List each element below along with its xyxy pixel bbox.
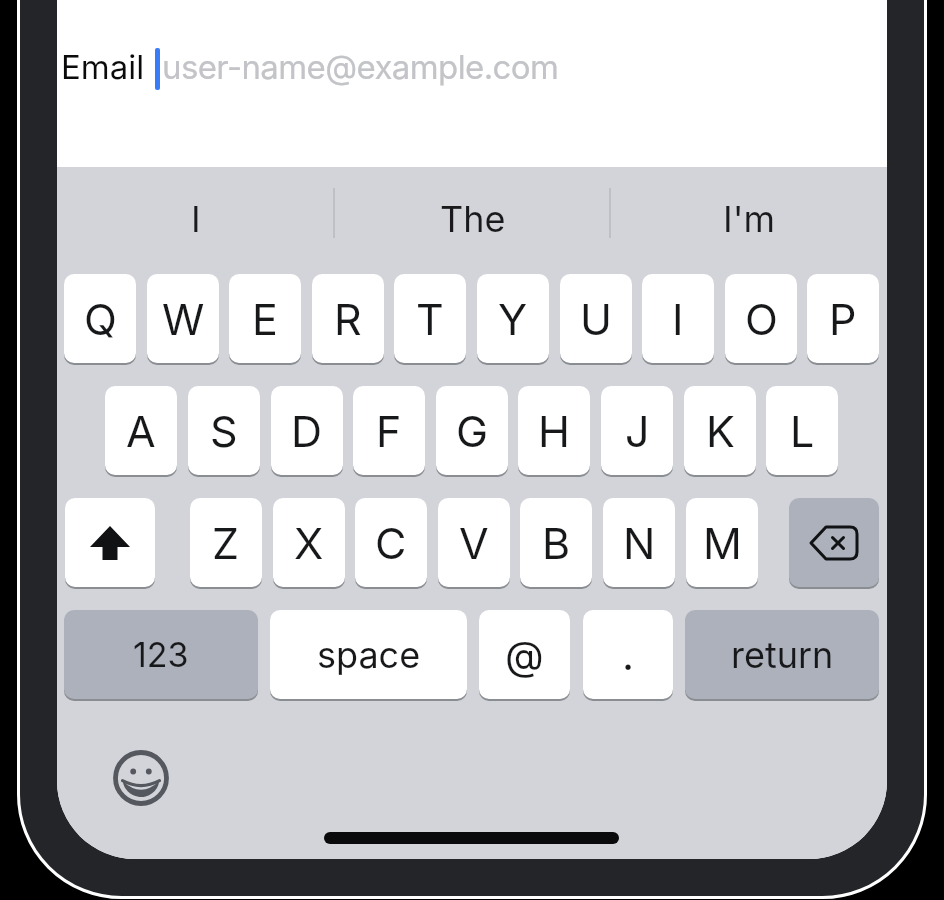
staticText: S: [210, 405, 238, 457]
staticText: O: [745, 293, 778, 345]
button[interactable]: W: [147, 274, 219, 363]
staticText: W: [162, 293, 205, 345]
button[interactable]: D: [271, 386, 343, 475]
staticText: I: [672, 293, 684, 345]
staticText: Q: [84, 293, 117, 345]
staticText: I'm: [723, 197, 775, 241]
button[interactable]: 123: [64, 610, 258, 699]
button[interactable]: I: [642, 274, 714, 363]
staticText: The: [440, 197, 506, 241]
staticText: .: [622, 629, 635, 680]
button[interactable]: N: [603, 498, 675, 587]
staticText: F: [376, 405, 402, 457]
button[interactable]: V: [438, 498, 510, 587]
button[interactable]: E: [229, 274, 301, 363]
button[interactable]: M: [686, 498, 758, 587]
button[interactable]: R: [312, 274, 384, 363]
button[interactable]: U: [560, 274, 632, 363]
button[interactable]: O: [725, 274, 797, 363]
staticText: P: [829, 293, 857, 345]
button[interactable]: P: [807, 274, 879, 363]
button[interactable]: T: [394, 274, 466, 363]
button[interactable]: S: [188, 386, 260, 475]
button[interactable]: L: [766, 386, 838, 475]
button[interactable]: The: [334, 189, 611, 249]
staticText: Z: [212, 517, 240, 569]
staticText: Y: [498, 293, 528, 345]
button[interactable]: Q: [64, 274, 136, 363]
button[interactable]: space: [270, 610, 467, 699]
staticText: 123: [133, 634, 189, 675]
staticText: Email: [61, 47, 145, 87]
button[interactable]: B: [520, 498, 592, 587]
staticText: D: [291, 405, 323, 457]
button[interactable]: [65, 498, 155, 587]
button[interactable]: I: [57, 189, 334, 249]
staticText: B: [542, 517, 571, 569]
staticText: N: [623, 517, 656, 569]
staticText: space: [317, 633, 421, 677]
button[interactable]: J: [601, 386, 673, 475]
staticText: X: [294, 517, 324, 569]
button[interactable]: C: [355, 498, 427, 587]
staticText: I: [191, 197, 201, 241]
button[interactable]: G: [436, 386, 508, 475]
button[interactable]: Y: [477, 274, 549, 363]
button[interactable]: X: [273, 498, 345, 587]
button[interactable]: .: [583, 610, 673, 699]
button[interactable]: @: [479, 610, 570, 699]
button[interactable]: I'm: [610, 189, 887, 249]
button[interactable]: K: [684, 386, 756, 475]
staticText: J: [625, 405, 650, 457]
button[interactable]: Z: [190, 498, 262, 587]
staticText: U: [580, 293, 612, 345]
button[interactable]: F: [353, 386, 425, 475]
button[interactable]: [789, 498, 879, 587]
staticText: G: [456, 405, 489, 457]
staticText: M: [703, 517, 742, 569]
staticText: return: [731, 633, 834, 677]
staticText: T: [416, 293, 444, 345]
staticText: R: [334, 293, 362, 345]
staticText: C: [375, 517, 407, 569]
staticText: A: [126, 405, 156, 457]
button[interactable]: [57, 18, 887, 130]
staticText: L: [790, 405, 815, 457]
button[interactable]: [111, 748, 171, 808]
staticText: E: [252, 293, 278, 345]
staticText: K: [706, 405, 735, 457]
button[interactable]: H: [518, 386, 590, 475]
staticText: V: [459, 517, 489, 569]
staticText: H: [538, 405, 570, 457]
staticText: @: [505, 631, 544, 679]
button[interactable]: A: [105, 386, 177, 475]
button[interactable]: return: [685, 610, 879, 699]
staticText: user-name@example.com: [162, 47, 559, 87]
